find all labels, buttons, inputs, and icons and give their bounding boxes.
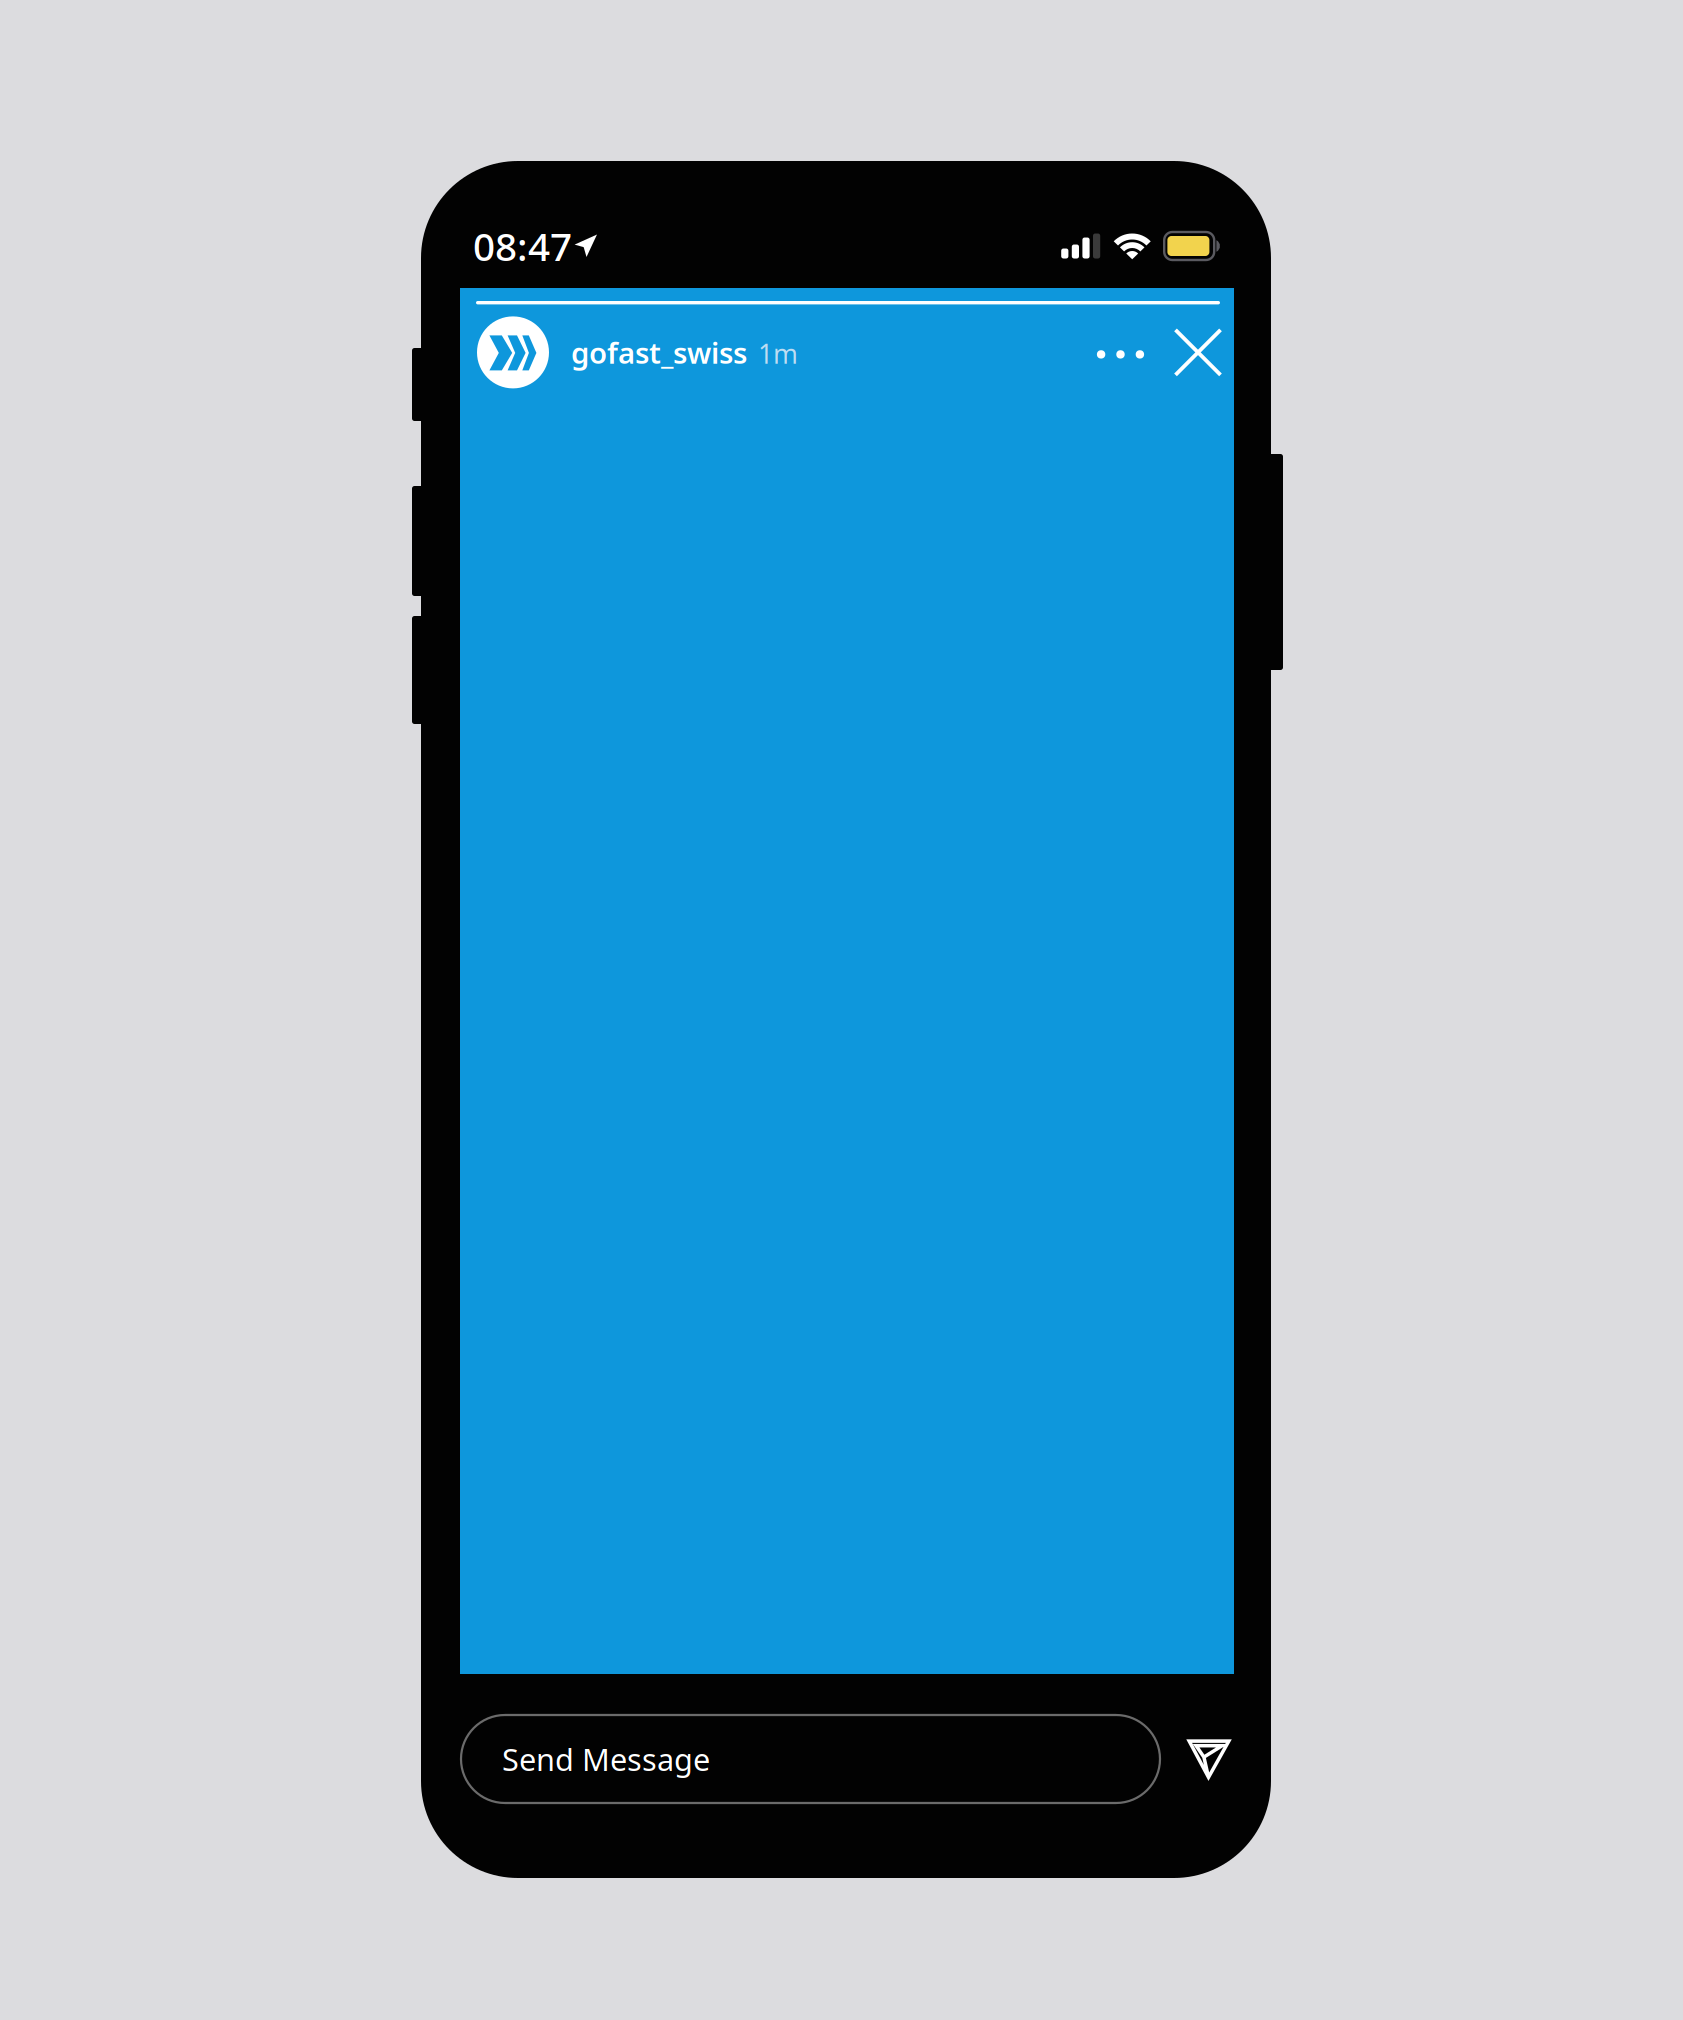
staticText: gofast_swiss xyxy=(571,333,747,372)
staticText: 08:47 xyxy=(473,220,572,272)
button[interactable]: More options xyxy=(1079,319,1172,385)
button[interactable]: Close xyxy=(1172,319,1224,385)
staticText: 1m xyxy=(758,336,798,371)
staticText: Send Message xyxy=(502,1739,710,1779)
button[interactable]: Send xyxy=(1175,1715,1231,1803)
button[interactable]: gofast_swiss xyxy=(477,316,798,388)
button[interactable]: Send Message xyxy=(461,1715,1160,1803)
